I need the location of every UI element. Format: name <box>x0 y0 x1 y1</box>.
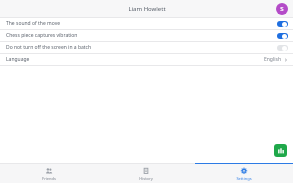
staticText: Language <box>6 56 264 63</box>
staticText: History <box>139 176 153 181</box>
button[interactable]: History <box>97 163 195 183</box>
button[interactable]: The sound of the move <box>0 18 293 29</box>
button[interactable]: Toggle on <box>277 21 288 27</box>
staticText: The sound of the move <box>6 20 277 27</box>
button[interactable]: Toggle on <box>277 33 288 39</box>
button[interactable]: Language <box>0 54 293 65</box>
button[interactable]: Do not turn off the screen in a batch <box>0 42 293 53</box>
button[interactable]: Settings <box>195 163 293 183</box>
staticText: Friends <box>42 176 56 181</box>
button[interactable]: Profile <box>276 3 288 15</box>
button[interactable]: Toggle off <box>277 45 288 51</box>
button[interactable]: Chess piece captures vibration <box>0 30 293 41</box>
button[interactable]: Friends <box>0 163 97 183</box>
staticText: Liam Howlett <box>128 5 166 13</box>
staticText: S <box>280 5 284 13</box>
staticText: Settings <box>236 176 252 181</box>
button[interactable]: New game <box>274 144 287 157</box>
button[interactable]: English <box>264 56 288 63</box>
staticText: Do not turn off the screen in a batch <box>6 44 277 51</box>
staticText: Chess piece captures vibration <box>6 32 277 39</box>
staticText: English <box>264 56 282 63</box>
